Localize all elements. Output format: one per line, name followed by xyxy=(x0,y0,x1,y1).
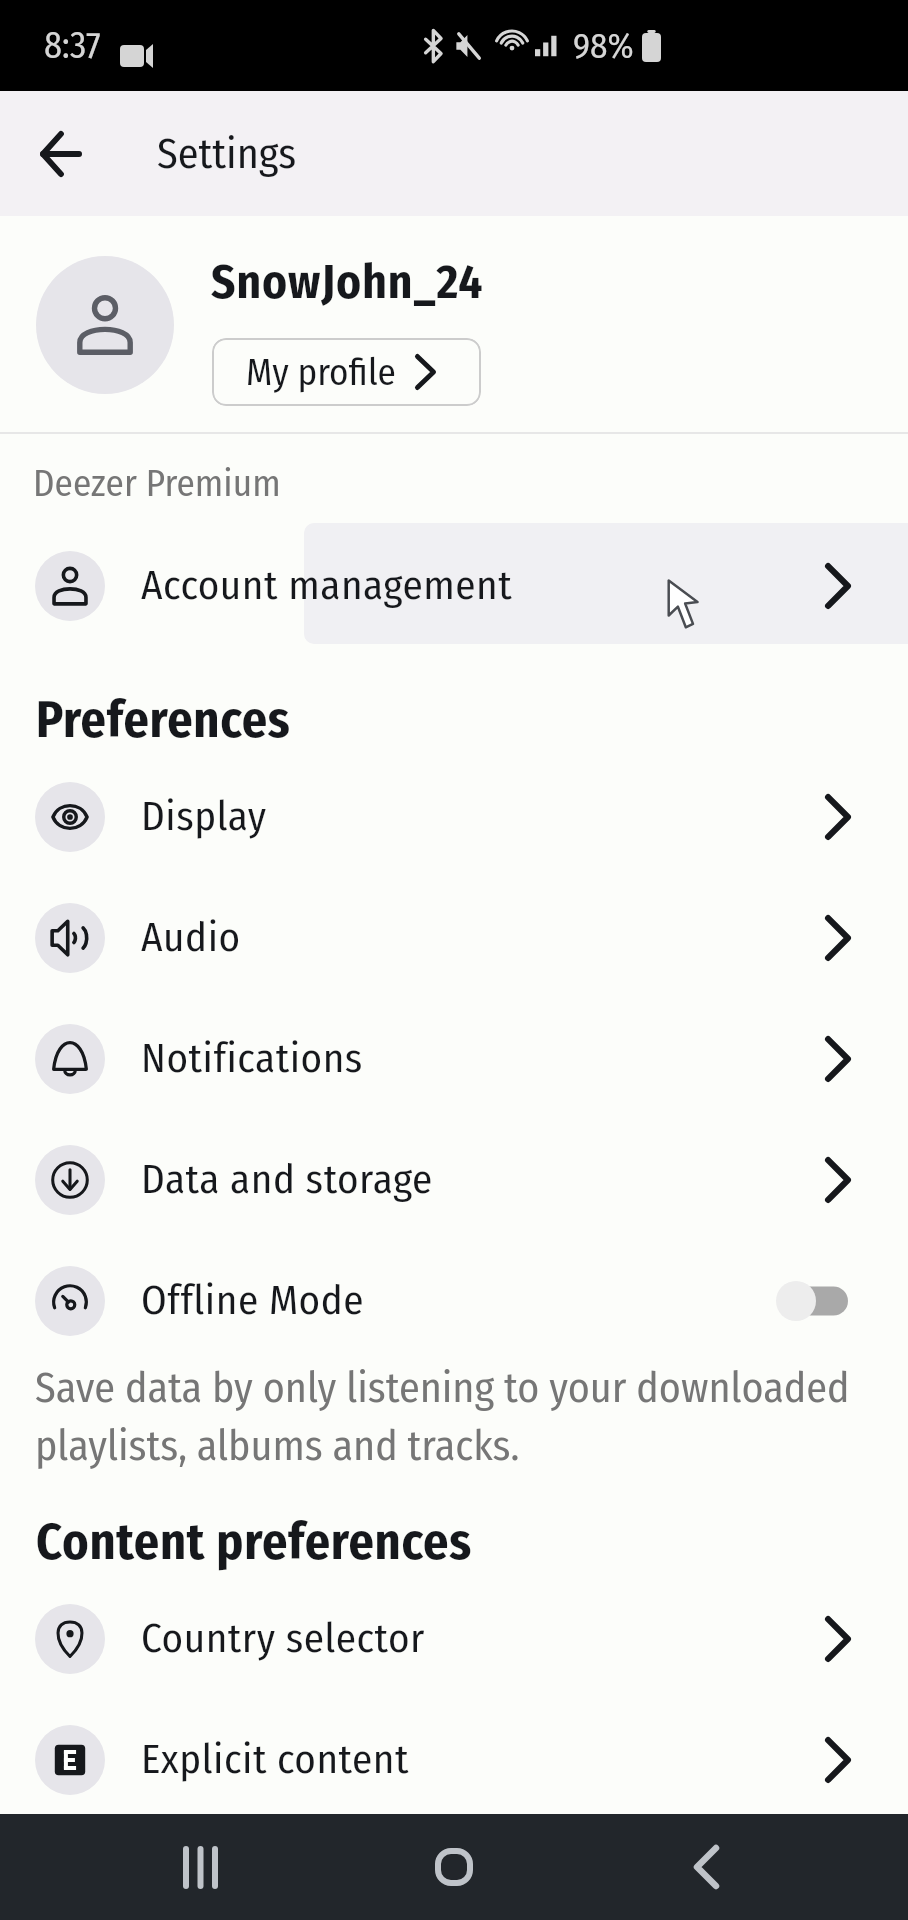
button[interactable]: Account management xyxy=(0,525,908,646)
staticText: 98% xyxy=(573,25,634,67)
button[interactable]: Offline Mode xyxy=(0,1240,908,1361)
staticText: Offline Mode xyxy=(141,1276,365,1325)
staticText: Notifications xyxy=(141,1034,363,1083)
staticText: Deezer Premium xyxy=(33,461,281,505)
button[interactable]: My profile xyxy=(212,338,481,406)
button[interactable]: Back xyxy=(661,1822,751,1912)
staticText: SnowJohn_24 xyxy=(211,254,484,310)
button[interactable]: Explicit content xyxy=(0,1699,908,1820)
staticText: 8:37 xyxy=(44,24,101,67)
staticText: Settings xyxy=(157,129,297,179)
staticText: Display xyxy=(141,792,267,841)
button[interactable]: Back xyxy=(20,113,102,195)
button[interactable]: Country selector xyxy=(0,1578,908,1699)
staticText: Data and storage xyxy=(141,1155,433,1204)
staticText: Content preferences xyxy=(36,1512,472,1572)
button[interactable]: Offline Mode toggle xyxy=(776,1279,848,1323)
staticText: Country selector xyxy=(141,1614,425,1663)
button[interactable]: Notifications xyxy=(0,998,908,1119)
button[interactable]: Display xyxy=(0,756,908,877)
button[interactable]: Home xyxy=(409,1822,499,1912)
button[interactable]: Recent apps xyxy=(155,1822,245,1912)
staticText: Explicit content xyxy=(141,1735,409,1784)
staticText: Preferences xyxy=(36,690,291,750)
staticText: My profile xyxy=(246,350,396,394)
button[interactable]: Audio xyxy=(0,877,908,998)
button[interactable]: Data and storage xyxy=(0,1119,908,1240)
staticText: Audio xyxy=(141,913,241,962)
staticText: Account management xyxy=(141,561,513,610)
staticText: Save data by only listening to your down… xyxy=(35,1363,870,1471)
